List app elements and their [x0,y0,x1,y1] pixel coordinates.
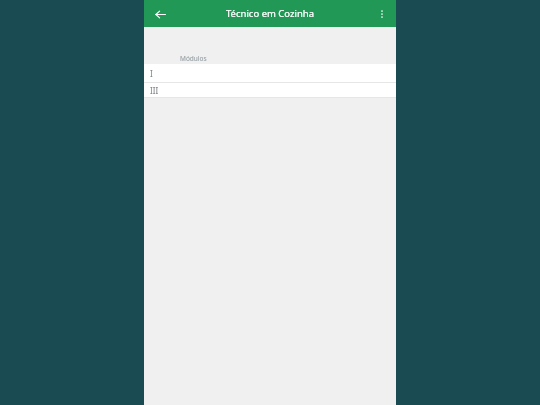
staticText: Técnico em Cozinha [226,7,314,20]
button[interactable]: Back [149,3,171,25]
staticText: III [150,85,159,96]
staticText: I [150,68,153,79]
staticText: Módulos [180,54,207,63]
button[interactable]: I [144,64,396,82]
button[interactable]: III [144,83,396,97]
button[interactable]: More options [371,3,393,25]
